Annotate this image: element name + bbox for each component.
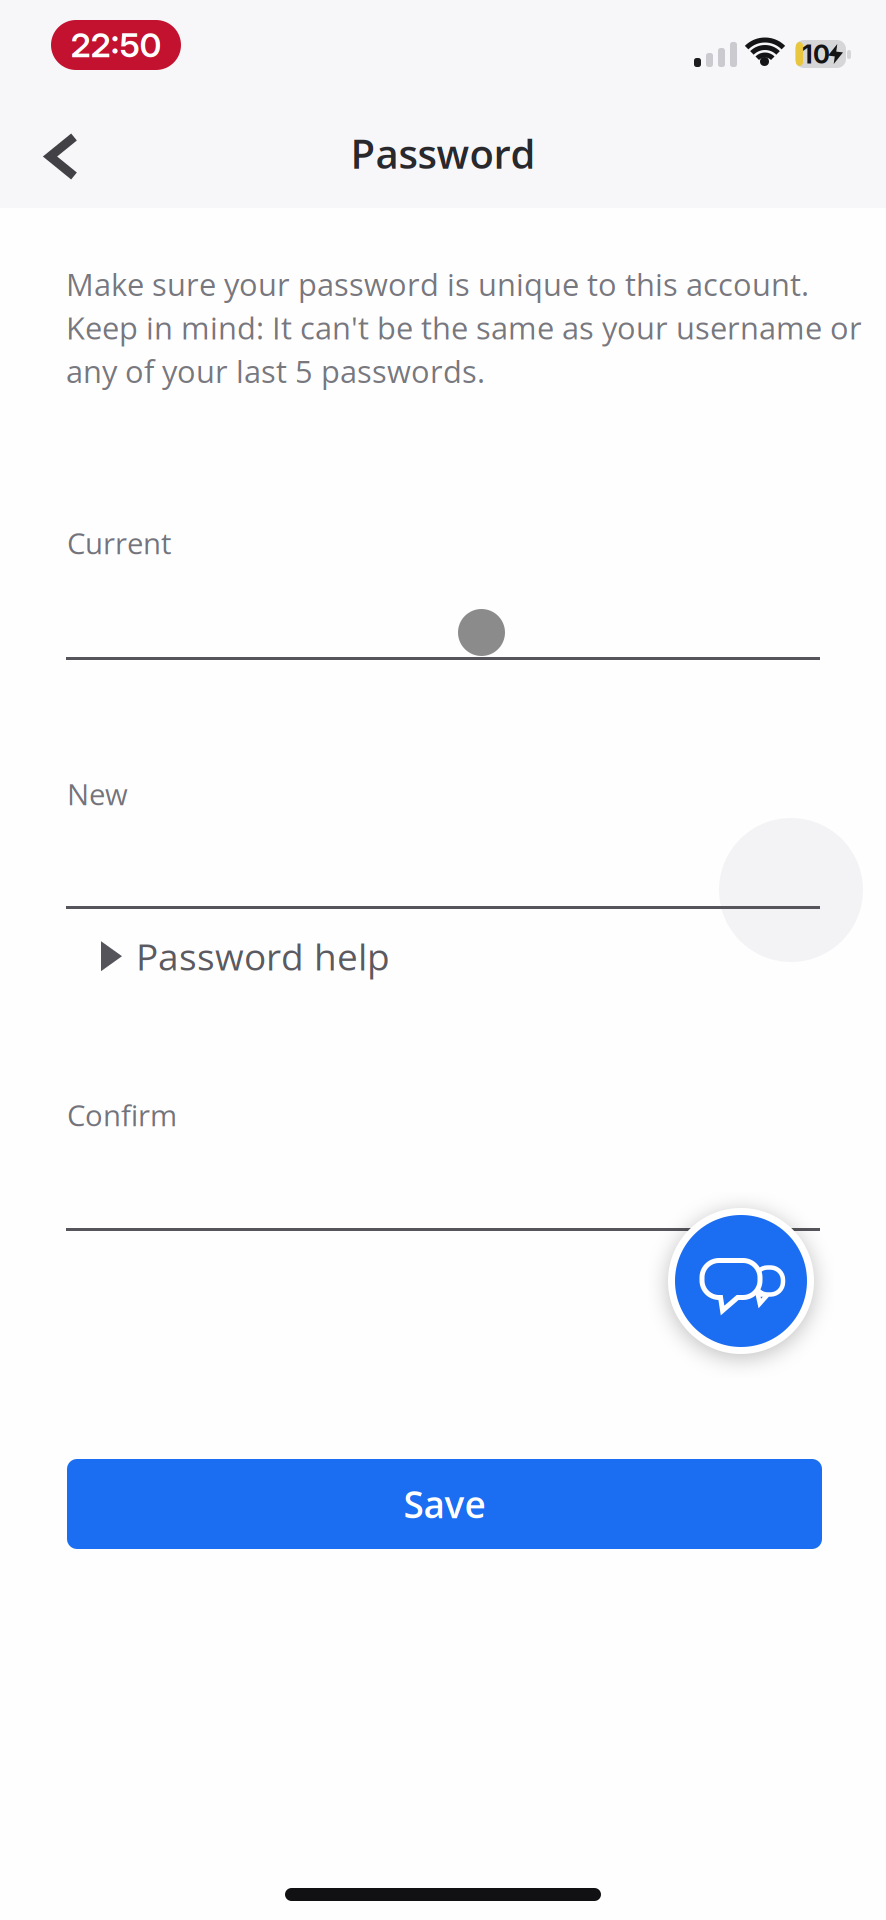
staticText: Password help [136,931,390,981]
staticText: Save [403,1479,485,1529]
staticText: Current [67,523,171,563]
button[interactable]: Save [67,1459,822,1549]
button[interactable]: Recording indicator 22:50 [51,20,181,70]
staticText: Password [350,126,535,180]
button[interactable]: Back [38,129,86,184]
staticText: Confirm [67,1095,177,1135]
staticText: Make sure your password is unique to thi… [66,263,862,392]
button[interactable]: Chat support [664,1204,818,1358]
staticText: 22:50 [70,24,161,65]
staticText: 10 [802,39,830,70]
staticText: New [67,774,128,814]
button[interactable]: Password help [101,931,390,981]
